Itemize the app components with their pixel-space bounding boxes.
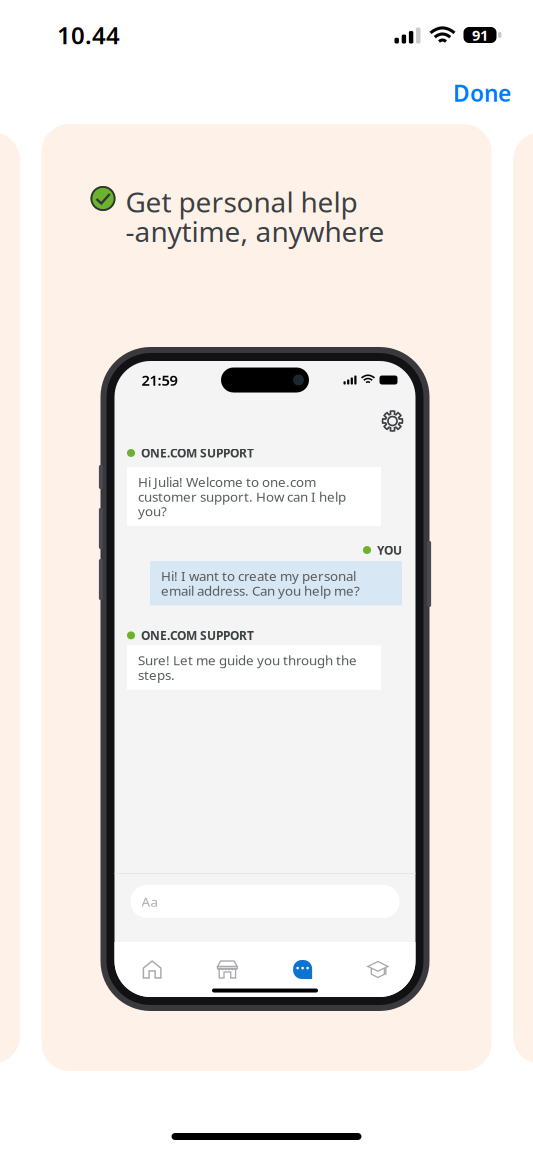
staticText: 21:59 bbox=[141, 370, 177, 390]
button[interactable]: Done bbox=[439, 74, 533, 120]
staticText: Hi! I want to create my personal email a… bbox=[161, 567, 360, 599]
staticText: 10.44 bbox=[57, 19, 120, 51]
staticText: Sure! Let me guide you through the steps… bbox=[138, 651, 357, 684]
staticText: 91 bbox=[472, 25, 488, 45]
button[interactable]: Chat bbox=[265, 942, 340, 997]
button[interactable]: Settings bbox=[376, 406, 408, 436]
staticText: YOU bbox=[377, 542, 402, 558]
staticText: ONE.COM SUPPORT bbox=[141, 627, 254, 643]
button[interactable]: Learn bbox=[340, 942, 415, 997]
staticText: Get personal help bbox=[125, 183, 357, 220]
staticText: Done bbox=[453, 78, 511, 108]
staticText: Aa bbox=[141, 893, 157, 910]
staticText: Hi Julia! Welcome to one.com customer su… bbox=[138, 473, 346, 520]
button[interactable]: Home bbox=[114, 942, 190, 997]
button[interactable]: Shop bbox=[190, 942, 265, 997]
staticText: ONE.COM SUPPORT bbox=[141, 445, 254, 461]
staticText: -anytime, anywhere bbox=[125, 213, 384, 250]
